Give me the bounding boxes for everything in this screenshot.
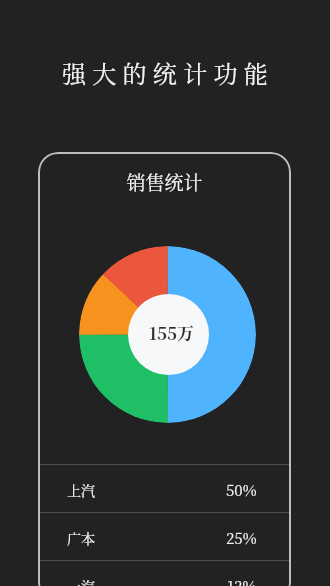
staticText: 上汽 (67, 480, 95, 500)
staticText: 销售统计 (38, 168, 291, 195)
button[interactable]: 销售统计饼图 155万 (79, 246, 256, 423)
button[interactable]: 一汽 (38, 560, 291, 586)
staticText: 强大的统计功能 (3, 55, 330, 89)
staticText: 25% (226, 527, 257, 549)
staticText: 广本 (67, 528, 95, 548)
staticText: 12% (227, 575, 257, 586)
button[interactable]: 广本 (38, 512, 291, 560)
staticText: 一汽 (67, 576, 95, 586)
staticText: 155万 (149, 320, 195, 344)
button[interactable]: 上汽 (38, 464, 291, 512)
staticText: 50% (226, 479, 257, 501)
